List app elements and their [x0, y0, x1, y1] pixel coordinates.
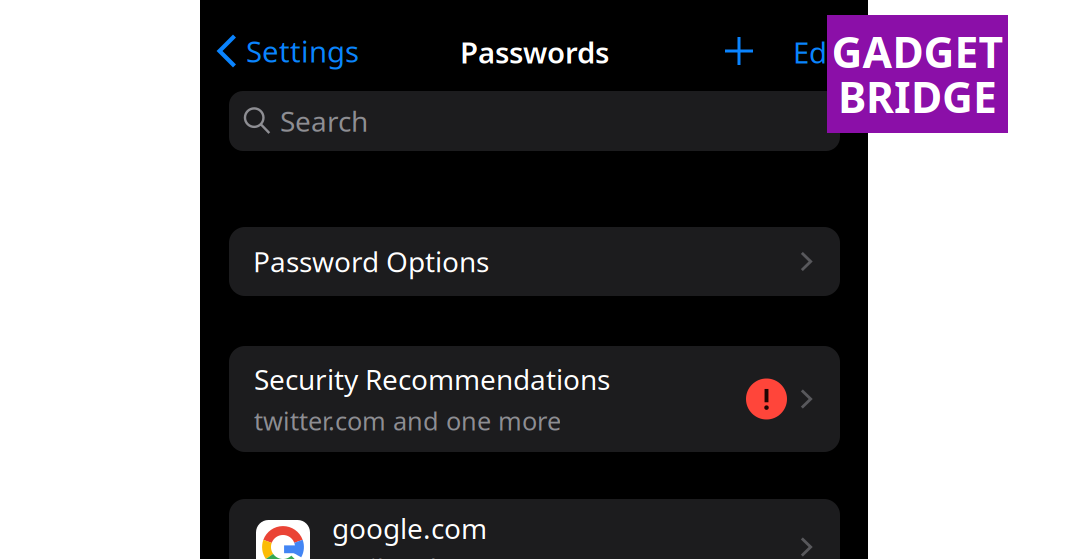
staticText: Security Recommendations	[254, 361, 610, 398]
staticText: GADGET	[831, 23, 1003, 80]
button[interactable]: Edit	[793, 32, 857, 71]
button[interactable]: google.com	[229, 499, 840, 559]
button[interactable]: Search	[229, 91, 840, 151]
button[interactable]: Settings	[210, 31, 382, 70]
staticText: twitter.com and one more	[254, 404, 561, 437]
button[interactable]: Password Options	[229, 227, 840, 296]
button[interactable]: Security Recommendations	[229, 346, 840, 452]
staticText: Password Options	[253, 243, 489, 280]
staticText: google.com	[332, 510, 487, 547]
staticText: Settings	[246, 31, 359, 70]
staticText: BRIDGE	[838, 68, 997, 125]
staticText: Search	[280, 102, 368, 140]
staticText: mail and 2 more	[332, 551, 528, 559]
staticText: Edit	[793, 32, 846, 71]
staticText: Passwords	[460, 32, 609, 71]
button[interactable]: Add Password	[725, 37, 753, 65]
